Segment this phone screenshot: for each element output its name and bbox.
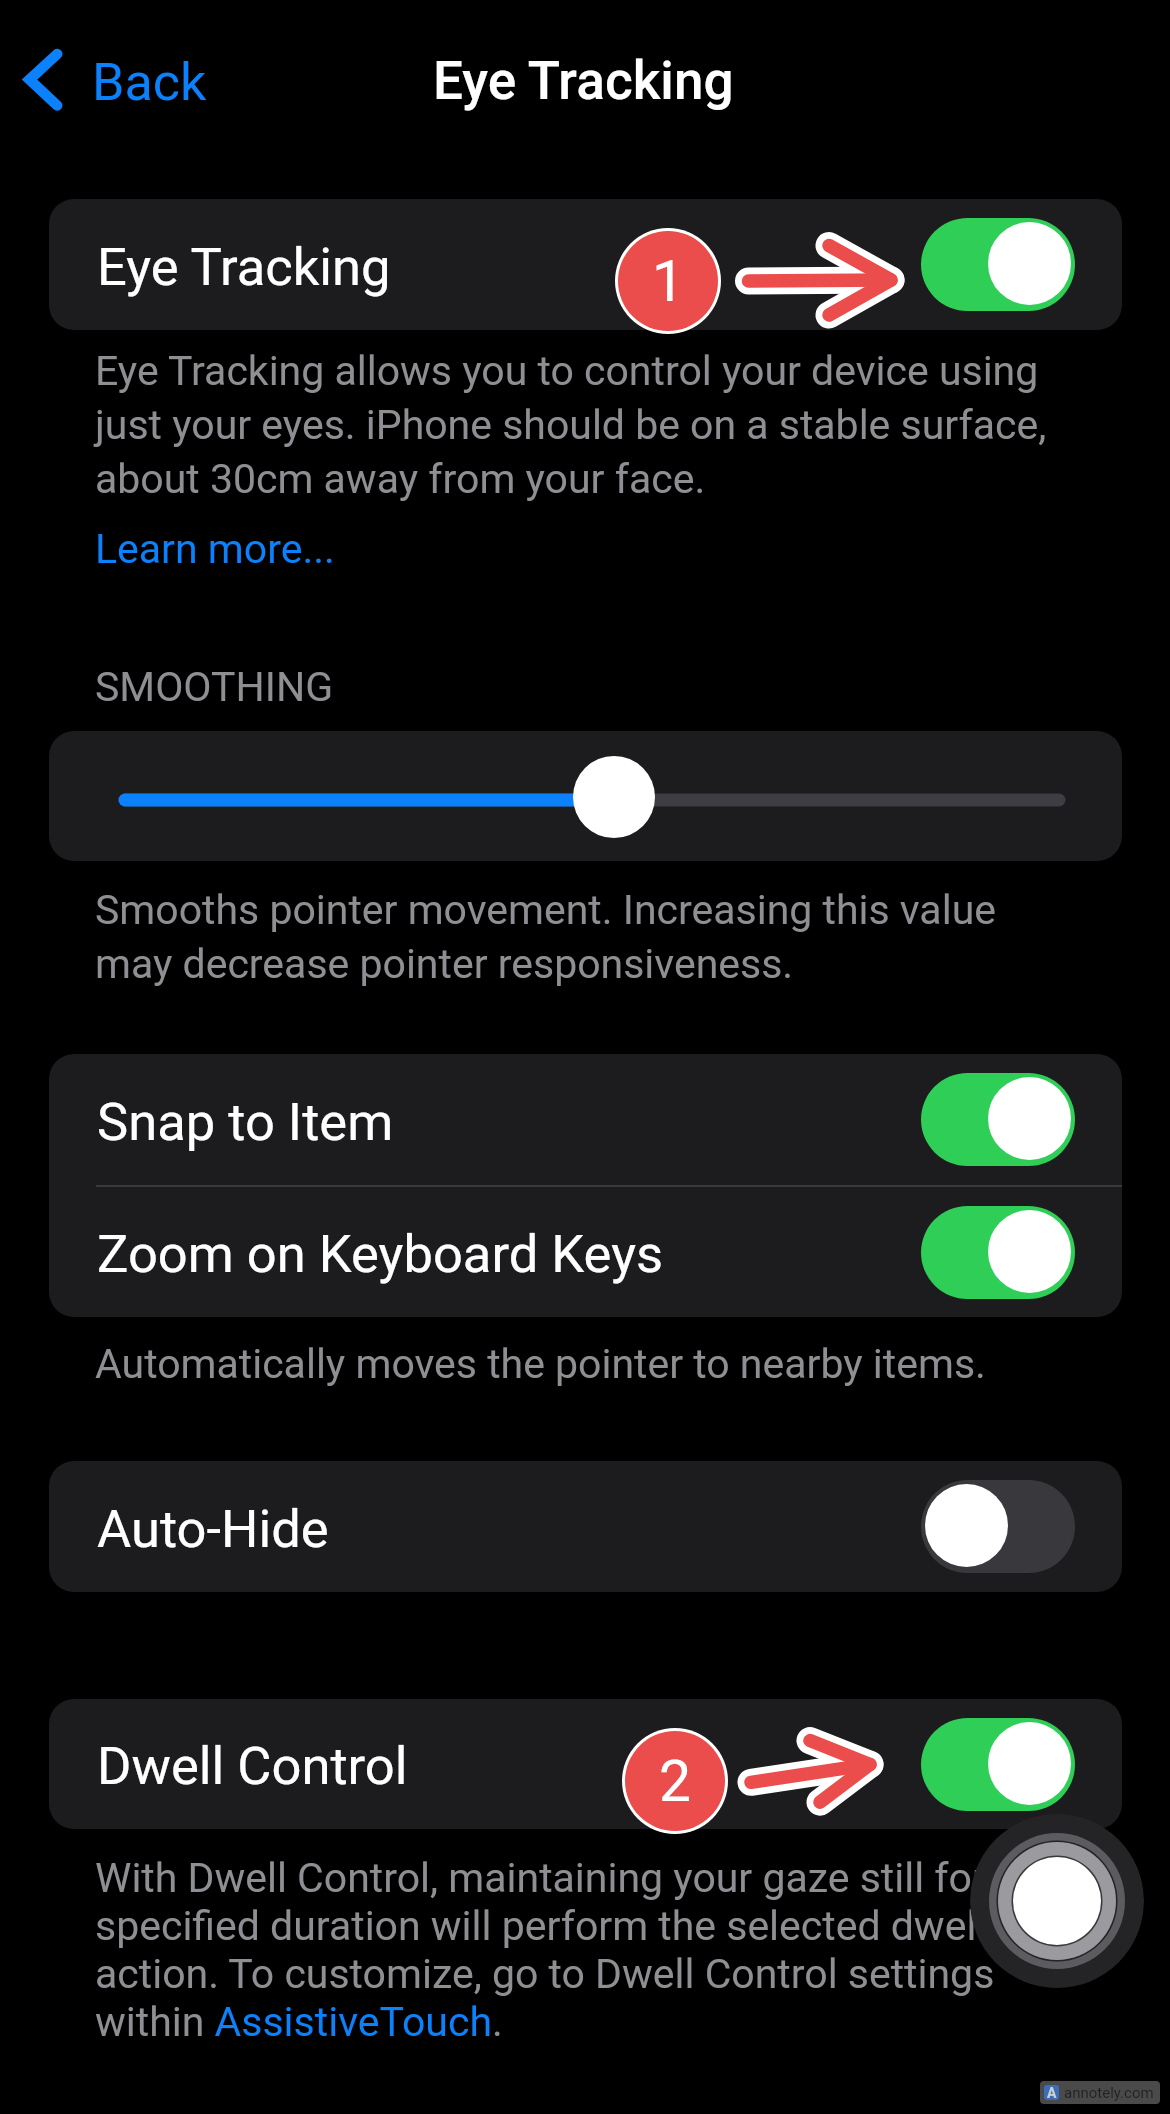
button[interactable]: Smoothing slider (49, 731, 1122, 861)
staticText: annotely.com (1064, 2084, 1154, 2102)
button[interactable]: Auto-Hide (49, 1461, 1122, 1592)
staticText: about 30cm away from your face. (95, 455, 706, 503)
staticText: Snap to Item (97, 1091, 394, 1153)
staticText: Auto-Hide (97, 1498, 329, 1560)
button[interactable]: Turn off (921, 1206, 1075, 1299)
button[interactable]: Turn off (921, 1073, 1075, 1166)
button[interactable]: Snap to Item (49, 1054, 1122, 1185)
staticText: Eye Tracking allows you to control your … (95, 347, 1039, 395)
staticText: just your eyes. iPhone should be on a st… (95, 401, 1047, 449)
staticText: Dwell Control (97, 1735, 408, 1797)
button[interactable]: Turn off (921, 1718, 1075, 1811)
button[interactable]: Turn off (921, 218, 1075, 311)
button[interactable]: Turn on (921, 1480, 1075, 1573)
staticText: With Dwell Control, maintaining your gaz… (95, 1854, 1019, 1902)
staticText: may decrease pointer responsiveness. (95, 940, 794, 988)
staticText: Eye Tracking (433, 50, 734, 112)
staticText: within AssistiveTouch. (95, 1998, 503, 2046)
staticText: Back (92, 52, 207, 113)
button[interactable]: Zoom on Keyboard Keys (49, 1187, 1122, 1317)
button[interactable]: Dwell Control (49, 1699, 1122, 1829)
button[interactable]: Back (18, 38, 218, 122)
staticText: Eye Tracking (97, 236, 391, 298)
staticText: Smooths pointer movement. Increasing thi… (95, 886, 996, 934)
button[interactable]: AssistiveTouch (970, 1813, 1144, 1989)
staticText: 2 (659, 1748, 692, 1815)
staticText: Zoom on Keyboard Keys (97, 1223, 664, 1285)
staticText: SMOOTHING (95, 663, 334, 711)
staticText: action. To customize, go to Dwell Contro… (95, 1950, 995, 1998)
staticText: specified duration will perform the sele… (95, 1902, 987, 1950)
button[interactable]: Learn more... (95, 525, 335, 573)
button[interactable]: Eye Tracking (49, 199, 1122, 330)
staticText: 1 (652, 248, 685, 315)
staticText: Automatically moves the pointer to nearb… (95, 1340, 986, 1388)
staticText: A (1047, 2085, 1057, 2100)
